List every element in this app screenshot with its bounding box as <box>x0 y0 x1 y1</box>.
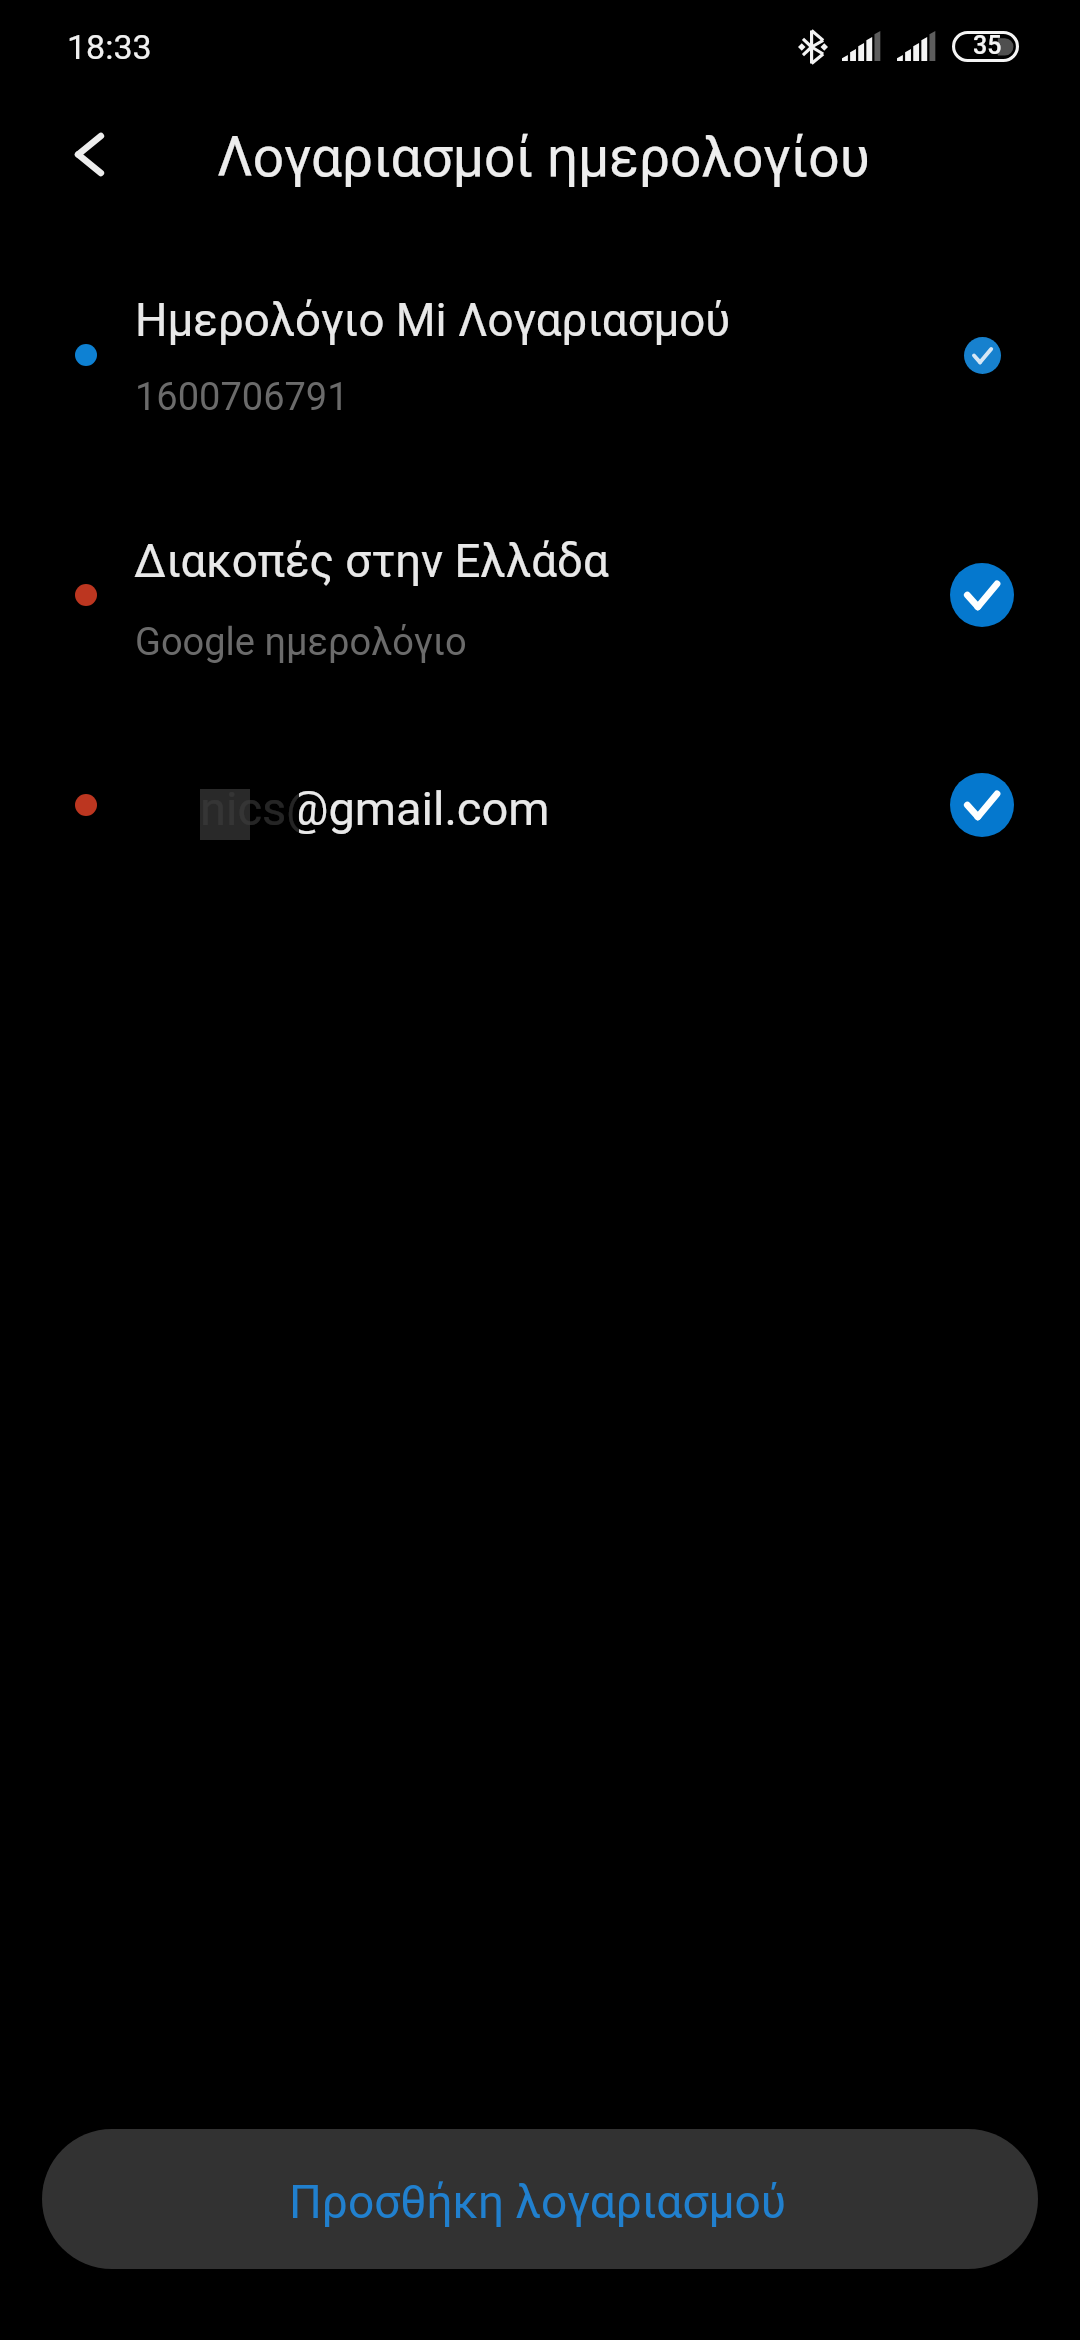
button[interactable]: Back <box>31 96 147 212</box>
button[interactable]: Toggle Email account <box>928 751 1036 859</box>
staticText: 35 <box>973 31 1002 60</box>
button[interactable]: Προσθήκη λογαριασμού <box>42 2129 1038 2269</box>
staticText: Διακοπές στην Ελλάδα <box>134 535 609 588</box>
staticText: Google ημερολόγιο <box>135 620 467 665</box>
staticText: Λογαριασμοί ημερολογίου <box>217 125 870 189</box>
button[interactable]: Διακοπές στην Ελλάδα <box>0 506 1080 684</box>
button[interactable]: Toggle Ημερολόγιο Mi Λογαριασμού <box>928 301 1036 409</box>
button[interactable]: Ημερολόγιο Mi Λογαριασμού <box>0 268 1080 444</box>
staticText: 1600706791 <box>135 375 349 420</box>
staticText: Ημερολόγιο Mi Λογαριασμού <box>135 294 731 347</box>
staticText: nics@gmail.com <box>200 781 550 836</box>
staticText: 18:33 <box>67 27 152 67</box>
button[interactable]: Email account <box>0 740 1080 870</box>
button[interactable]: Toggle Διακοπές στην Ελλάδα <box>928 541 1036 649</box>
staticText: Προσθήκη λογαριασμού <box>289 2175 786 2229</box>
